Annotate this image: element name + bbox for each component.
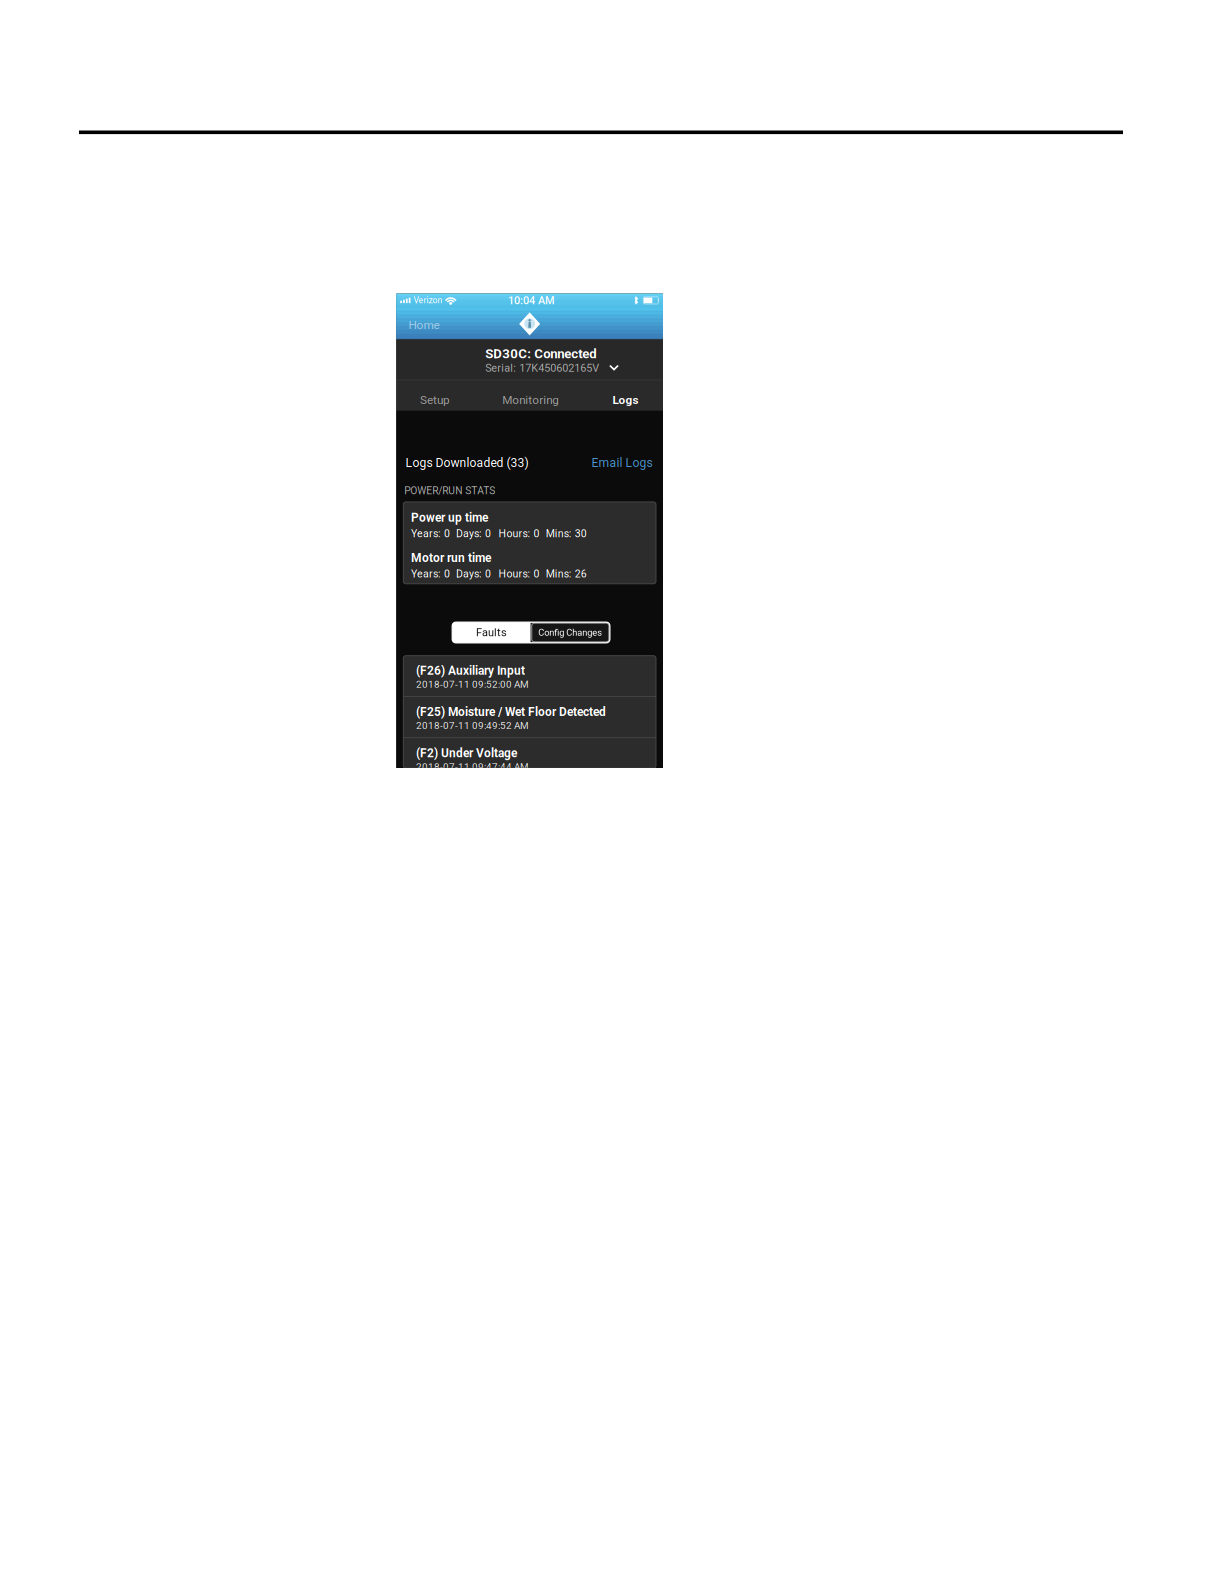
staticText: (F26) Auxiliary Input: [416, 664, 525, 678]
staticText: Logs Downloaded (33): [405, 456, 528, 470]
button[interactable]: Setup: [396, 384, 474, 416]
staticText: Hours: 0: [498, 527, 539, 540]
staticText: Years: 0: [411, 527, 450, 540]
staticText: Faults: [476, 626, 507, 639]
button[interactable]: Faults: [452, 622, 531, 643]
button[interactable]: Email Logs: [591, 456, 652, 470]
staticText: Setup: [420, 393, 450, 407]
staticText: Motor run time: [411, 551, 491, 565]
button[interactable]: (F25) Moisture / Wet Floor Detected: [403, 697, 656, 737]
staticText: POWER/RUN STATS: [404, 485, 495, 497]
staticText: Serial: 17K450602165V: [485, 362, 599, 374]
button[interactable]: Franklin Electric: [516, 309, 543, 338]
staticText: Home: [408, 318, 439, 332]
staticText: Mins: 30: [546, 527, 587, 540]
staticText: Mins: 26: [546, 568, 587, 580]
staticText: Days: 0: [456, 568, 491, 580]
button[interactable]: (F26) Auxiliary Input: [403, 656, 656, 696]
staticText: Config Changes: [538, 627, 602, 638]
staticText: 2018-07-11 09:47:44 AM: [416, 761, 529, 773]
button[interactable]: SD30C: Connected: [396, 339, 663, 379]
staticText: Days: 0: [456, 527, 491, 540]
button[interactable]: Home: [396, 310, 446, 336]
staticText: Power up time: [411, 511, 488, 525]
staticText: Email Logs: [591, 456, 652, 470]
staticText: SD30C: Connected: [485, 346, 596, 362]
button[interactable]: (F2) Under Voltage: [403, 738, 656, 778]
button[interactable]: Monitoring: [474, 384, 588, 416]
staticText: 2018-07-11 09:52:00 AM: [416, 679, 529, 690]
button[interactable]: Config Changes: [531, 622, 610, 643]
button[interactable]: Logs: [588, 384, 663, 416]
staticText: Years: 0: [411, 568, 450, 580]
staticText: 2018-07-11 09:49:52 AM: [416, 720, 529, 731]
staticText: (F2) Under Voltage: [416, 746, 517, 760]
staticText: Monitoring: [502, 393, 559, 407]
staticText: Logs: [612, 393, 638, 407]
staticText: Hours: 0: [498, 568, 539, 580]
staticText: Verizon: [413, 295, 442, 305]
staticText: 10:04 AM: [508, 294, 555, 307]
staticText: (F25) Moisture / Wet Floor Detected: [416, 705, 606, 719]
